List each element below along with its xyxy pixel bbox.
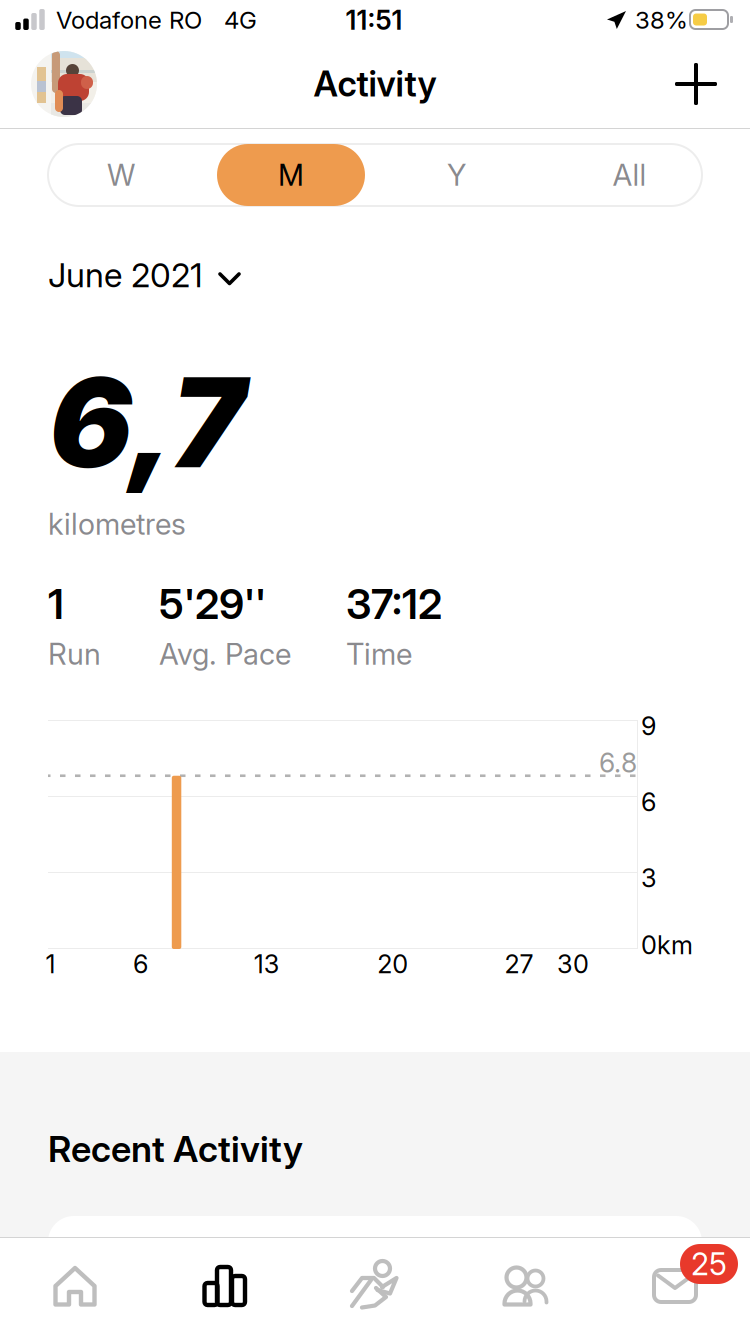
staticText: 5'29'': [159, 579, 266, 629]
staticText: All: [612, 157, 646, 193]
staticText: Time: [346, 636, 412, 672]
staticText: 4G: [224, 5, 257, 34]
button[interactable]: Profile: [31, 51, 97, 117]
staticText: 1: [45, 949, 55, 979]
staticText: M: [278, 157, 304, 193]
staticText: 27: [504, 949, 533, 979]
staticText: 30: [557, 949, 589, 979]
button[interactable]: Club: [450, 1238, 600, 1334]
staticText: 11:51: [345, 4, 402, 36]
button[interactable]: Activity: [150, 1238, 300, 1334]
staticText: 38%: [635, 5, 688, 34]
staticText: 6: [133, 949, 148, 979]
staticText: June 2021: [48, 255, 203, 295]
staticText: Vodafone RO: [56, 5, 202, 34]
staticText: 9: [641, 711, 656, 741]
staticText: 1: [48, 579, 64, 629]
staticText: W: [107, 157, 135, 193]
staticText: 37:12: [346, 579, 442, 629]
staticText: 3: [641, 863, 657, 893]
staticText: 0km: [641, 930, 693, 960]
staticText: Y: [447, 157, 466, 193]
staticText: 6,7: [49, 347, 245, 497]
button[interactable]: M: [211, 144, 371, 206]
button[interactable]: Add activity: [668, 56, 724, 112]
staticText: 6.8: [599, 747, 637, 779]
staticText: Activity: [313, 63, 436, 105]
button[interactable]: Y: [376, 144, 536, 206]
staticText: 6: [641, 787, 656, 817]
staticText: 20: [377, 949, 408, 979]
button[interactable]: Record: [300, 1238, 450, 1334]
staticText: Avg. Pace: [159, 636, 291, 672]
button[interactable]: Home: [0, 1238, 150, 1334]
button[interactable]: Inbox, 25 unread: [600, 1238, 750, 1334]
staticText: kilometres: [48, 506, 186, 542]
button[interactable]: June 2021: [48, 252, 241, 298]
staticText: 25: [691, 1245, 727, 1282]
staticText: Run: [48, 636, 101, 672]
staticText: 13: [254, 949, 280, 979]
button[interactable]: W: [41, 144, 201, 206]
staticText: Recent Activity: [48, 1127, 303, 1171]
button[interactable]: All: [549, 144, 709, 206]
